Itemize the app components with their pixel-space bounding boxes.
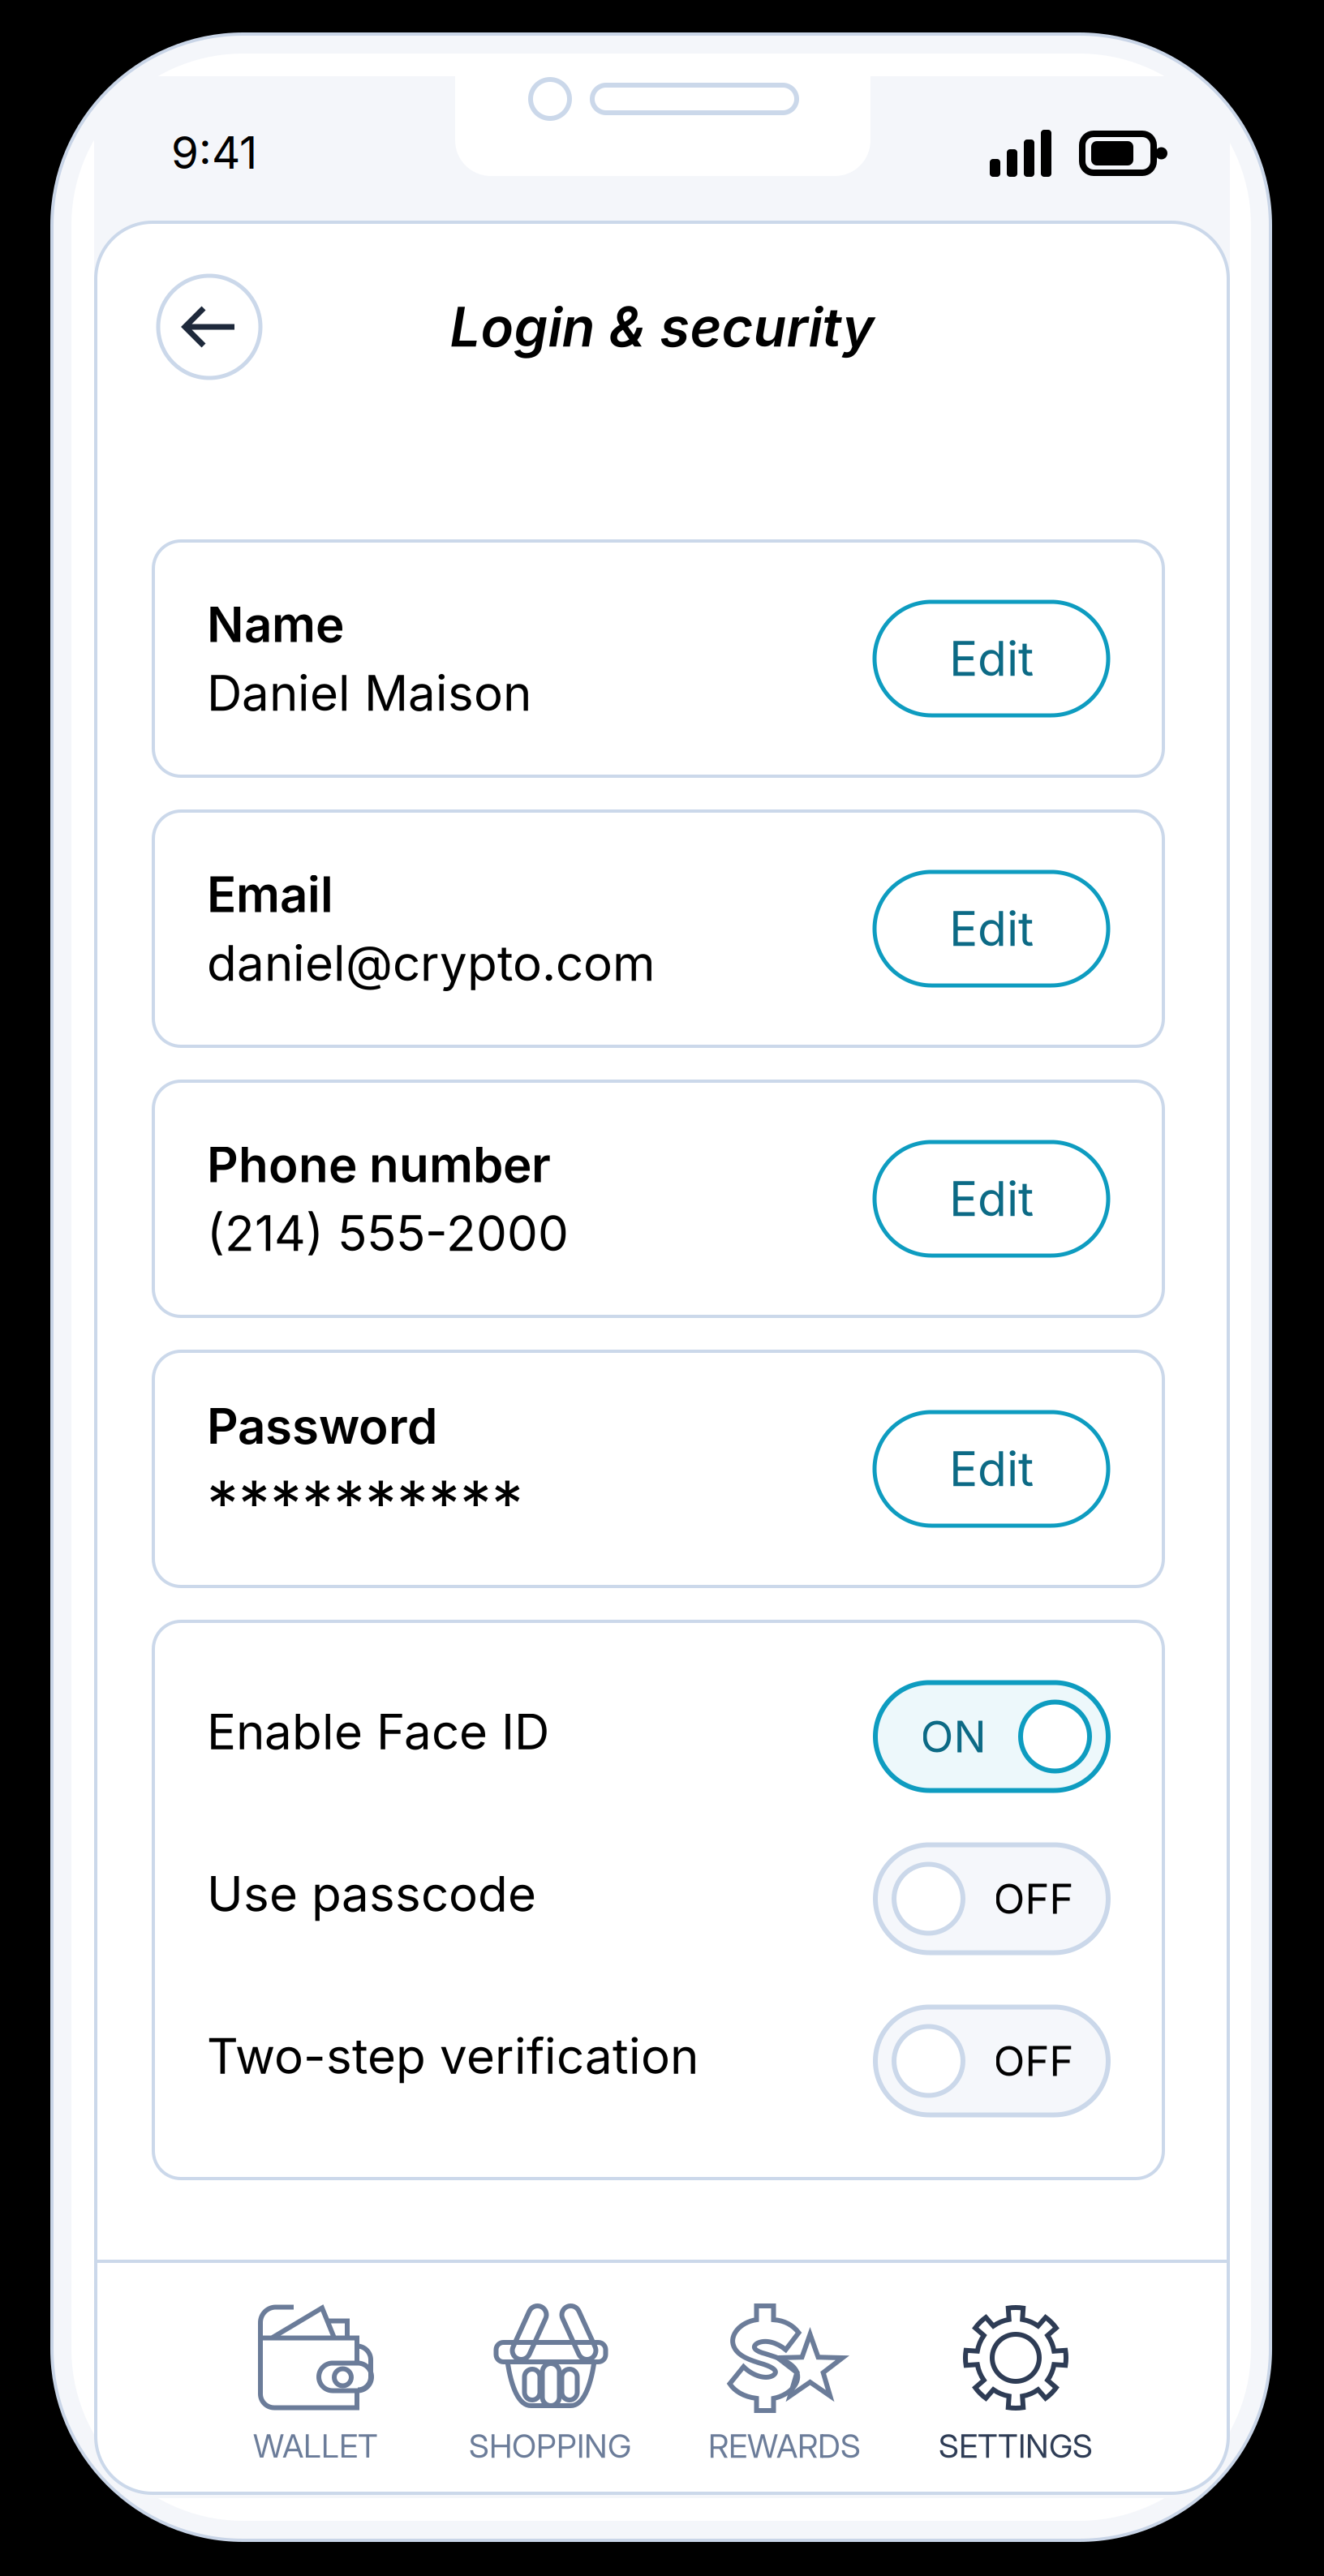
staticText: Edit: [949, 1170, 1034, 1228]
staticText: OFF: [993, 2036, 1074, 2086]
button[interactable]: Back: [158, 276, 260, 378]
button[interactable]: Two-step verification: [153, 1980, 1163, 2142]
staticText: Daniel Maison: [207, 663, 531, 722]
staticText: SHOPPING: [469, 2426, 631, 2466]
button[interactable]: Enable Face ID: [153, 1655, 1163, 1818]
staticText: WALLET: [253, 2426, 378, 2466]
staticText: 9:41: [171, 126, 257, 179]
staticText: daniel@crypto.com: [207, 934, 656, 992]
staticText: OFF: [993, 1874, 1074, 1924]
staticText: Edit: [949, 630, 1034, 687]
button[interactable]: WALLET: [198, 2303, 433, 2466]
button[interactable]: Use passcode: [153, 1818, 1163, 1980]
button[interactable]: SETTINGS: [898, 2303, 1133, 2466]
staticText: Two-step verification: [207, 2027, 699, 2086]
button[interactable]: REWARDS: [667, 2303, 902, 2466]
button[interactable]: Edit: [875, 1142, 1108, 1256]
staticText: (214) 555-2000: [207, 1204, 569, 1263]
button[interactable]: SHOPPING: [432, 2303, 668, 2466]
staticText: Edit: [949, 900, 1034, 957]
staticText: SETTINGS: [939, 2426, 1093, 2466]
staticText: Phone number: [207, 1135, 551, 1194]
staticText: **********: [207, 1465, 523, 1541]
staticText: REWARDS: [708, 2426, 861, 2466]
button[interactable]: Edit: [875, 872, 1108, 985]
staticText: Login & security: [450, 294, 874, 360]
button[interactable]: Edit: [875, 1412, 1108, 1526]
staticText: Password: [207, 1397, 437, 1455]
staticText: Edit: [949, 1440, 1034, 1498]
staticText: Use passcode: [207, 1864, 536, 1923]
staticText: Enable Face ID: [207, 1702, 549, 1761]
staticText: Email: [207, 865, 333, 924]
staticText: ON: [920, 1710, 986, 1763]
staticText: Name: [207, 595, 344, 654]
button[interactable]: Edit: [875, 602, 1108, 715]
